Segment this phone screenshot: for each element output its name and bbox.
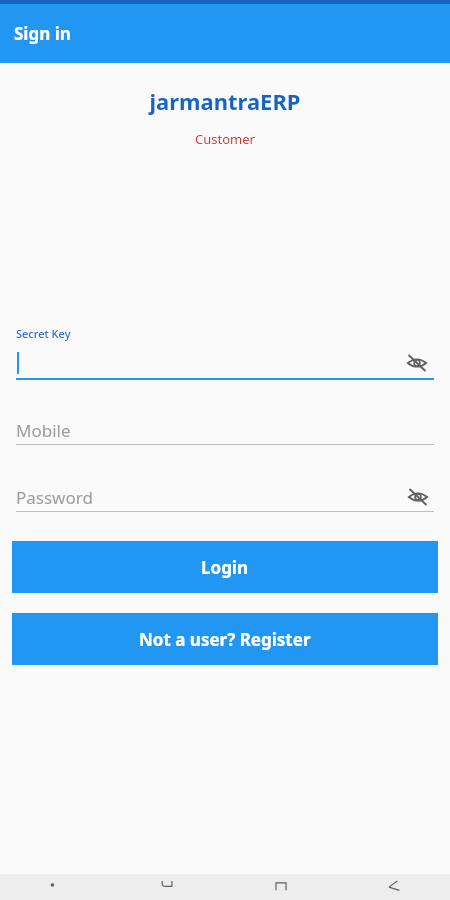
staticText: Not a user? Register	[139, 628, 311, 651]
staticText: Secret Key	[16, 326, 71, 341]
button[interactable]: Show password	[402, 483, 434, 511]
button[interactable]: Back	[112, 881, 224, 900]
button[interactable]: Login	[12, 541, 438, 593]
staticText: Mobile	[16, 419, 71, 442]
button[interactable]: Mobile	[16, 416, 434, 444]
button[interactable]: Recents	[337, 881, 450, 900]
button[interactable]: Not a user? Register	[12, 613, 438, 665]
button[interactable]: Show secret key	[16, 348, 434, 378]
staticText: Login	[201, 556, 249, 579]
staticText: Password	[16, 486, 93, 509]
button[interactable]: Password	[16, 483, 434, 511]
button[interactable]: Show secret key	[400, 348, 434, 378]
staticText: jarmantraERP	[0, 86, 450, 116]
button[interactable]: Menu	[0, 881, 112, 900]
staticText: Sign in	[14, 22, 71, 45]
button[interactable]: Home	[224, 881, 337, 900]
staticText: Customer	[0, 130, 450, 148]
